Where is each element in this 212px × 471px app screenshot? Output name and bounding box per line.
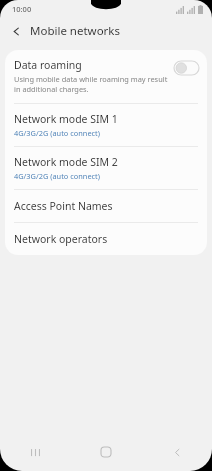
button[interactable]: Recents (22, 439, 48, 465)
staticText: 4G/3G/2G (auto connect) (14, 128, 100, 138)
staticText: 10:00 (12, 4, 32, 14)
button[interactable]: Network operators (5, 223, 207, 255)
staticText: Network operators (14, 232, 108, 246)
button[interactable]: Data roaming (5, 50, 207, 103)
staticText: Data roaming (14, 58, 82, 72)
staticText: Network mode SIM 1 (14, 112, 118, 126)
button[interactable]: Access Point Names (5, 190, 207, 222)
button[interactable]: Back (5, 20, 27, 42)
button[interactable]: Network mode SIM 2 (5, 147, 207, 189)
staticText: Network mode SIM 2 (14, 155, 118, 169)
staticText: 4G/3G/2G (auto connect) (14, 171, 100, 181)
staticText: Mobile networks (30, 23, 121, 39)
staticText: Access Point Names (14, 199, 113, 213)
button[interactable]: Home (93, 439, 119, 465)
staticText: Using mobile data while roaming may resu… (14, 74, 170, 94)
button[interactable]: Back (164, 439, 190, 465)
button[interactable]: Data roaming toggle (174, 61, 199, 75)
button[interactable]: Network mode SIM 1 (5, 104, 207, 146)
